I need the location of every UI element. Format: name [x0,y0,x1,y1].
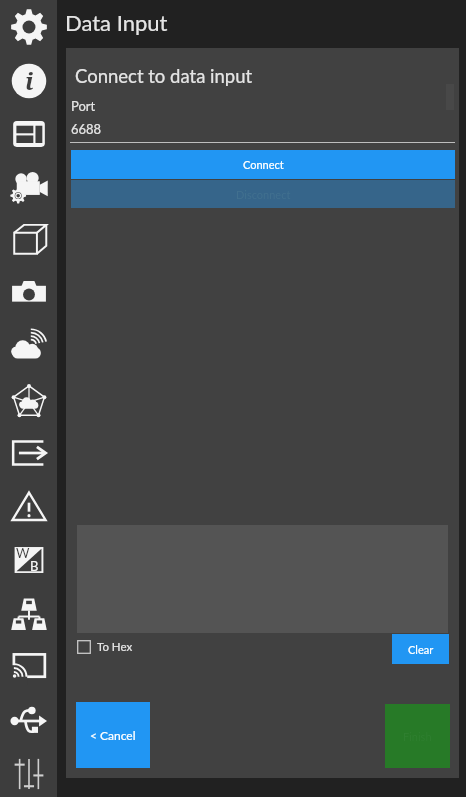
button[interactable]: Adjustments [2,747,55,797]
staticText: i [25,64,34,97]
button[interactable]: < Cancel [76,702,150,768]
button[interactable]: Info [2,54,55,107]
button[interactable]: USB [2,694,55,747]
button[interactable]: Camera settings [2,160,55,213]
button[interactable]: Settings [2,0,55,53]
button[interactable]: Clear [392,634,449,664]
button[interactable]: Cast [2,640,55,693]
staticText: To Hex [97,640,133,654]
staticText: B [30,558,39,574]
staticText: Clear [408,643,434,656]
button[interactable]: 3D model [2,213,55,266]
button[interactable]: Dashboard [2,107,55,160]
button[interactable]: Cloud [2,319,55,372]
button[interactable]: Camera [2,266,55,319]
staticText: < Cancel [90,728,136,742]
button[interactable]: Warnings [2,480,55,533]
staticText: W [16,545,30,561]
staticText: Connect to data input [75,65,253,87]
button[interactable]: To Hex [77,640,133,654]
staticText: Data Input [65,9,168,35]
staticText: 6688 [71,121,102,137]
staticText: Port [71,98,96,114]
button[interactable]: LAN [2,587,55,640]
button[interactable]: Network mesh [2,373,55,426]
staticText: Connect [243,158,284,171]
button[interactable]: White balance [2,533,55,586]
staticText: Disconnect [236,188,291,201]
button[interactable]: Connect [71,150,455,179]
button[interactable]: Export [2,426,55,479]
